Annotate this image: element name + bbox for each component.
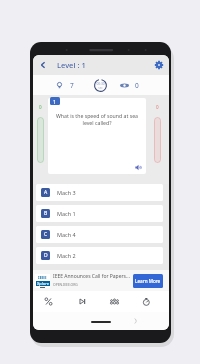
button[interactable]: Learn More	[133, 274, 163, 288]
staticText: OPEN.IEEE.ORG	[53, 282, 78, 287]
staticText: 0	[156, 104, 159, 110]
button[interactable]: C	[36, 226, 163, 243]
staticText: sec	[98, 86, 103, 90]
button[interactable]: Hints	[54, 79, 76, 92]
staticText: A	[44, 189, 48, 196]
staticText: Mach 1	[57, 210, 76, 217]
staticText: 1	[53, 98, 57, 105]
staticText: Mach 3	[57, 189, 76, 196]
button[interactable]: Next question	[69, 291, 95, 312]
button[interactable]: B	[36, 205, 163, 222]
staticText: Mach 4	[57, 231, 76, 238]
button[interactable]: A	[36, 184, 163, 201]
button[interactable]: Settings	[149, 55, 169, 75]
button[interactable]: Back	[33, 55, 53, 75]
button[interactable]: Read question aloud	[134, 163, 142, 171]
staticText: 00:30	[96, 82, 105, 86]
staticText: What is the speed of sound at sea level …	[51, 112, 143, 127]
button[interactable]: D	[36, 247, 163, 264]
button[interactable]: Leaderboard	[101, 291, 127, 312]
staticText: 0	[39, 104, 42, 110]
button[interactable]: Score	[35, 291, 61, 312]
staticText: Learn More	[135, 278, 161, 284]
staticText: C	[44, 231, 48, 238]
staticText: D	[44, 252, 48, 259]
button[interactable]: Timer	[93, 78, 108, 93]
staticText: 0	[135, 81, 139, 90]
staticText: IEEE	[38, 275, 47, 281]
staticText: 7	[70, 81, 74, 90]
button[interactable]: Timer	[133, 291, 159, 312]
staticText: Mach 2	[57, 252, 76, 259]
staticText: Xplore	[37, 281, 50, 286]
button[interactable]: Advertisement: IEEE Announces Call for P…	[33, 270, 169, 291]
staticText: B	[44, 210, 48, 217]
staticText: IEEE Announces Call for Papers...	[53, 273, 130, 280]
staticText: Level : 1	[57, 60, 86, 70]
button[interactable]: Views	[118, 79, 141, 92]
